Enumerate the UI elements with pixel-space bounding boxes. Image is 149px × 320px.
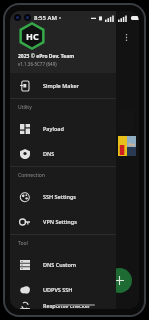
button[interactable]: More options [117, 28, 135, 46]
button[interactable]: DNS [10, 141, 116, 166]
staticText: Connection [18, 172, 45, 179]
staticText: 2023 © ePro Dev. Team [18, 53, 75, 60]
staticText: UDPVS SSH [43, 286, 73, 293]
button[interactable]: VPN Settings [10, 209, 116, 234]
button[interactable]: UDPVS SSH [10, 277, 116, 302]
staticText: v1.1.36-5C77 (649) [18, 61, 57, 67]
staticText: Payload [43, 125, 64, 132]
button[interactable]: SSH Settings [10, 184, 116, 209]
staticText: VPN Settings [43, 218, 77, 225]
button[interactable]: Payload [10, 116, 116, 141]
staticText: 8:55 AM [34, 14, 57, 22]
button[interactable]: Response checker [10, 302, 116, 309]
staticText: Response checker [43, 302, 91, 309]
staticText: HC [26, 30, 39, 42]
staticText: DNS Custom [43, 261, 77, 268]
button[interactable]: Add [107, 268, 132, 293]
staticText: Simple Maker [43, 82, 79, 89]
button[interactable]: Advertisement [118, 136, 136, 156]
staticText: DNS [43, 150, 55, 157]
button[interactable]: Cloud [99, 28, 117, 46]
button[interactable]: DNS Custom [10, 252, 116, 277]
staticText: Utility [18, 104, 32, 111]
staticText: Tool [18, 240, 28, 247]
button[interactable]: Simple Maker [10, 73, 116, 98]
staticText: SSH Settings [43, 193, 77, 200]
